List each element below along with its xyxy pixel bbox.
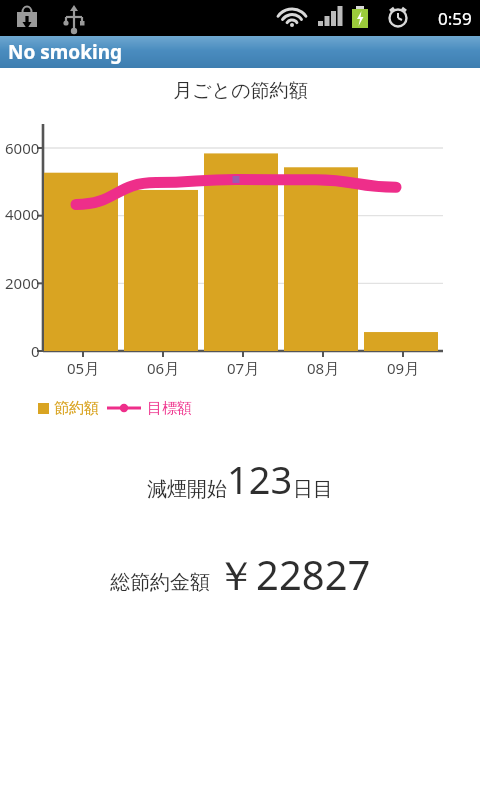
staticText: 目標額 bbox=[147, 399, 192, 418]
staticText: 節約額 bbox=[54, 399, 99, 418]
staticText: 09月 bbox=[387, 358, 420, 378]
staticText: 6000 bbox=[5, 138, 40, 158]
staticText: 日目 bbox=[293, 477, 333, 502]
staticText: 減煙開始 bbox=[147, 477, 227, 502]
staticText: 05月 bbox=[67, 358, 100, 378]
staticText: 2000 bbox=[5, 273, 40, 293]
staticText: 07月 bbox=[227, 358, 260, 378]
button[interactable]: 総節約金額 bbox=[0, 544, 480, 599]
staticText: 06月 bbox=[147, 358, 180, 378]
staticText: 0:59 bbox=[438, 7, 472, 30]
staticText: ￥22827 bbox=[216, 547, 371, 602]
staticText: 月ごとの節約額 bbox=[173, 79, 308, 103]
staticText: No smoking bbox=[8, 39, 123, 65]
staticText: 4000 bbox=[5, 204, 40, 224]
staticText: 123 bbox=[227, 453, 293, 505]
button[interactable]: No smoking bbox=[0, 36, 480, 68]
staticText: 0 bbox=[31, 341, 40, 361]
button[interactable]: 減煙開始 bbox=[0, 450, 480, 502]
staticText: 08月 bbox=[307, 358, 340, 378]
staticText: 総節約金額 bbox=[110, 570, 210, 595]
